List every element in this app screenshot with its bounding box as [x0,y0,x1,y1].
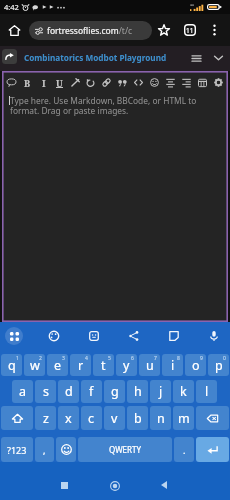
button[interactable]: Calendar [195,73,210,92]
button[interactable]: Topic menu [188,50,204,66]
staticText: g [111,383,119,400]
button[interactable]: Align center [163,73,178,92]
staticText: x [65,410,72,427]
button[interactable]: Quote [115,73,130,92]
button[interactable]: a [12,380,33,403]
button[interactable]: Recent apps [52,473,76,497]
staticText: l [205,383,209,400]
button[interactable]: x [58,406,79,430]
button[interactable]: Home [103,474,127,498]
button[interactable]: v [104,406,125,430]
button[interactable]: Back [152,473,176,497]
button[interactable]: Type here. Use Markdown, BBCode, or HTML… [10,95,222,320]
staticText: Combinatorics Modbot Playground [24,52,167,63]
button[interactable]: Comment [4,73,19,92]
button[interactable]: y [116,354,137,376]
button[interactable]: Enter [196,437,229,462]
button[interactable]: Expand [210,50,226,66]
button[interactable]: b [127,406,148,430]
button[interactable]: Bookmark [152,18,176,42]
button[interactable]: Italic [36,73,51,92]
staticText: QWERTY [109,444,142,455]
button[interactable]: o [185,354,206,376]
button[interactable]: Emoji [56,437,76,462]
staticText: f [89,383,94,400]
button[interactable]: w [24,354,45,376]
button[interactable]: . [174,437,194,462]
button[interactable]: Tabs: 11 open [178,18,202,42]
staticText: w [30,357,40,374]
button[interactable]: t [93,354,114,376]
staticText: i [171,357,175,374]
button[interactable]: e [47,354,68,376]
staticText: 6 [131,355,134,362]
button[interactable]: fortressoflies.com/t/c [29,21,152,40]
button[interactable]: g [104,380,125,403]
button[interactable]: Themes [44,326,64,346]
staticText: a [19,383,27,400]
button[interactable]: Stickers [84,326,104,346]
button[interactable]: Settings [211,73,226,92]
staticText: z [43,410,49,427]
button[interactable]: f [81,380,102,403]
staticText: j [159,383,163,400]
button[interactable]: Highlight [68,73,83,92]
button[interactable]: Share [124,326,144,346]
staticText: d [65,383,73,400]
button[interactable]: Undo [83,73,98,92]
staticText: U [56,77,63,89]
staticText: 11 [186,26,194,35]
button[interactable]: k [173,380,194,403]
button[interactable]: h [127,380,148,403]
button[interactable]: Voice input [204,326,224,346]
staticText: Type here. Use Markdown, BBCode, or HTML… [10,95,222,116]
button[interactable]: n [150,406,171,430]
button[interactable]: Backspace [196,406,229,430]
button[interactable]: QWERTY [78,437,172,462]
button[interactable]: m [173,406,194,430]
button[interactable]: r [70,354,91,376]
button[interactable]: Code [131,73,146,92]
button[interactable]: d [58,380,79,403]
button[interactable]: Align right [179,73,194,92]
button[interactable]: More options [202,18,226,42]
button[interactable]: Emoji [147,73,162,92]
button[interactable]: j [150,380,171,403]
staticText: h [134,383,142,400]
button[interactable]: z [35,406,56,430]
button[interactable]: Home [2,18,26,42]
button[interactable]: s [35,380,56,403]
button[interactable]: Underline [52,73,67,92]
staticText: u [146,357,154,374]
button[interactable]: i [162,354,183,376]
staticText: r [78,357,84,374]
staticText: 4 [85,355,88,362]
button[interactable]: Shift [1,406,33,430]
button[interactable]: q [1,354,22,376]
staticText: 8 [177,355,180,362]
button[interactable]: c [81,406,102,430]
button[interactable]: Apps [4,326,24,346]
button[interactable]: p [208,354,229,376]
staticText: k [180,383,187,400]
staticText: m [178,410,190,427]
button[interactable]: Bold [20,73,35,92]
staticText: y [123,357,130,374]
button[interactable]: u [139,354,160,376]
button[interactable]: Clipboard [164,326,184,346]
button[interactable]: l [196,380,217,403]
staticText: b [134,410,142,427]
button[interactable]: Link [99,73,114,92]
staticText: 0 [223,355,226,362]
button[interactable]: ?123 [1,437,33,462]
button[interactable]: Reply [2,49,17,64]
button[interactable]: , [35,437,54,462]
staticText: s [43,383,49,400]
staticText: 5 [108,355,111,362]
staticText: o [192,357,200,374]
staticText: . [183,444,186,456]
staticText: q [8,357,16,374]
staticText: 2 [39,355,42,362]
staticText: fortressoflies.com/t/c [47,25,133,37]
staticText: 9 [200,355,203,362]
